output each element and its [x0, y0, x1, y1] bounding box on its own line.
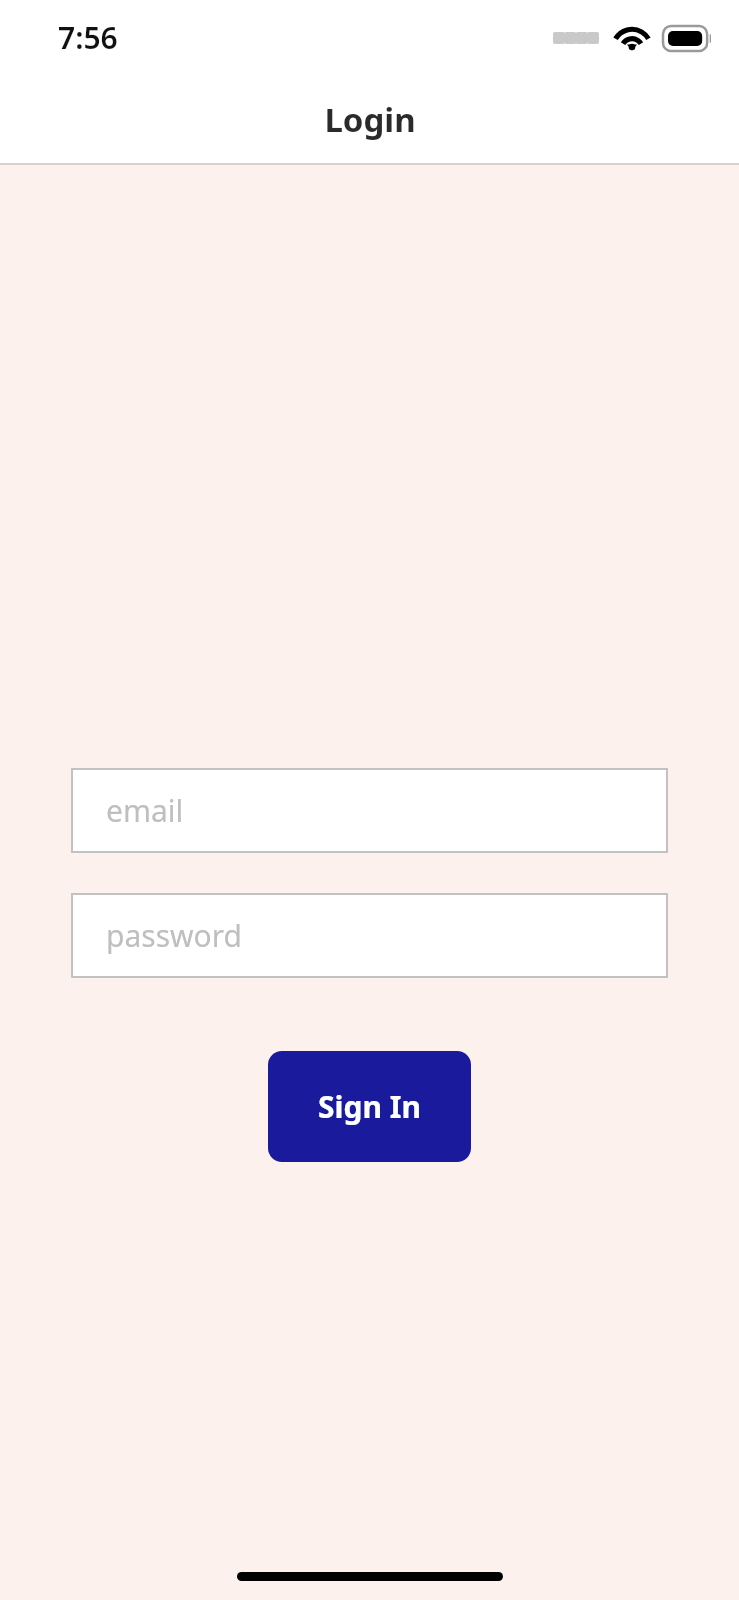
staticText: Sign In: [318, 1086, 421, 1127]
other: Battery: [663, 26, 711, 51]
other: Cellular signal: [553, 32, 599, 44]
staticText: email: [106, 790, 184, 831]
staticText: Login: [324, 97, 416, 142]
staticText: password: [106, 915, 242, 956]
button[interactable]: email: [71, 768, 668, 853]
staticText: 7:56: [58, 17, 118, 58]
button[interactable]: password: [71, 893, 668, 978]
other: Wi-Fi: [613, 23, 651, 53]
button[interactable]: Sign In: [268, 1051, 471, 1162]
